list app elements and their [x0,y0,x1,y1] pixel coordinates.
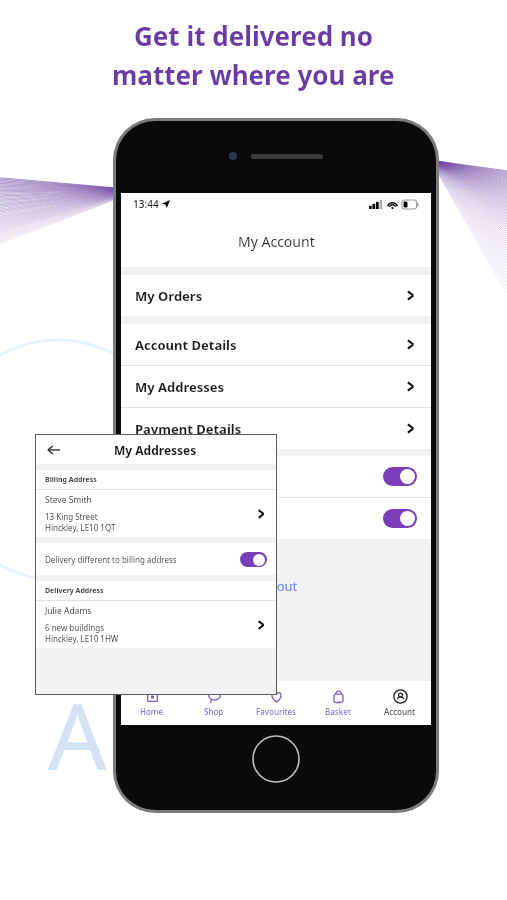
staticText: Favourites [256,706,297,717]
staticText: Basket [325,706,351,717]
button[interactable]: Back [46,442,62,458]
button[interactable]: Steve Smith [36,490,276,537]
staticText: Shop [204,706,224,717]
staticText: Hinckley, LE10 1HW [45,633,119,644]
staticText: Julie Adams [45,605,92,617]
staticText: Account [384,706,416,717]
staticText: Account Details [135,336,237,354]
button[interactable] [121,498,431,539]
staticText: 13:44 [133,197,159,211]
staticText: A [48,672,107,797]
staticText: 6 new buildings [45,622,104,633]
button[interactable]: Logout [246,569,306,603]
button[interactable]: Account Details [121,324,431,365]
staticText: Payment Details [135,420,242,438]
staticText: My Orders [135,287,203,305]
staticText: Delivery Address [45,586,104,596]
staticText: Logout [254,577,298,595]
button[interactable]: Payment Details [121,408,431,449]
staticText: My Addresses [135,378,225,396]
button[interactable]: Basket [307,685,369,721]
staticText: Get it delivered no [134,18,374,53]
staticText: 13 King Street [45,511,98,522]
button[interactable]: Favourites [245,685,307,721]
staticText: Home [140,706,164,717]
staticText: matter where you are [112,57,395,92]
button[interactable] [121,456,431,497]
button[interactable]: Shop [183,685,245,721]
button[interactable]: My Orders [121,275,431,316]
staticText: Steve Smith [45,494,92,506]
staticText: My Addresses [114,442,197,458]
button[interactable]: My Addresses [121,366,431,407]
staticText: My Account [238,232,315,251]
button[interactable]: Delivery different to billing address [36,543,276,575]
staticText: Billing Address [45,475,97,485]
button[interactable]: Account [369,685,431,721]
button[interactable]: Home [121,685,183,721]
staticText: Hinckley, LE10 1QT [45,522,116,533]
button[interactable]: Julie Adams [36,601,276,648]
staticText: Delivery different to billing address [45,554,177,565]
